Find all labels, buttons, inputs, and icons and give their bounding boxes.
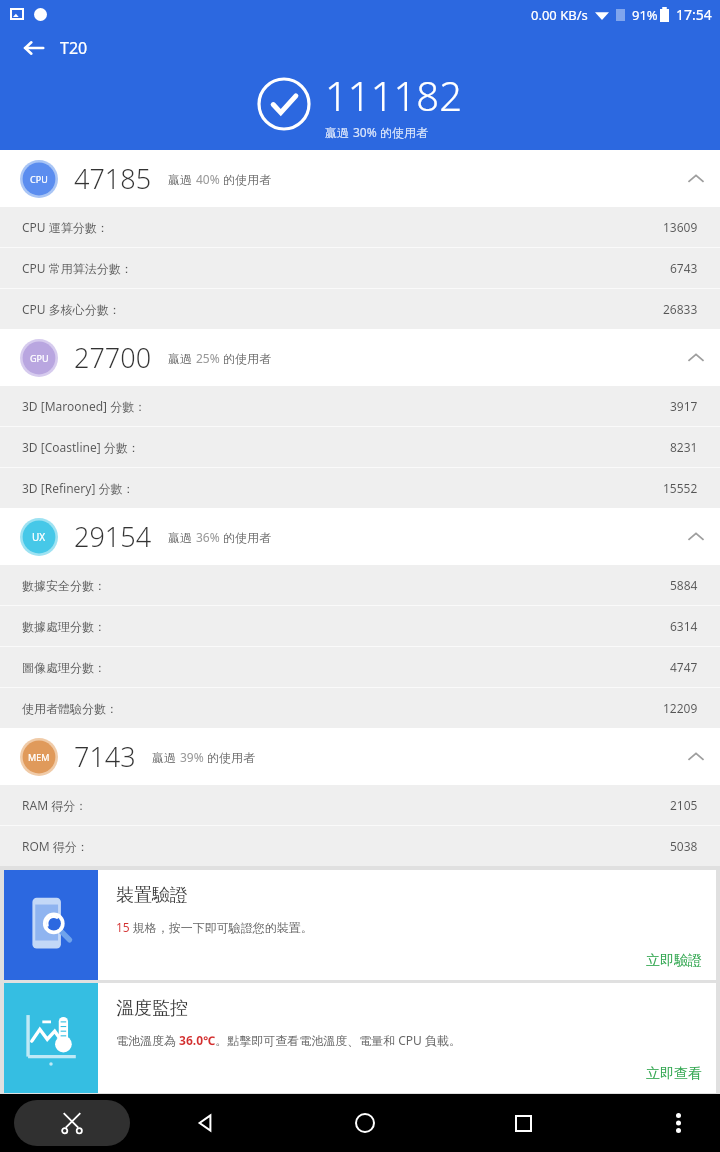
button[interactable]: 裝置驗證: [4, 870, 716, 980]
staticText: CPU 常用算法分數：: [22, 260, 133, 276]
staticText: 贏過: [168, 529, 196, 545]
staticText: 5038: [670, 838, 698, 854]
button[interactable]: 3D [Marooned] 分數：: [22, 386, 698, 426]
staticText: 贏過: [325, 124, 353, 140]
staticText: 13609: [663, 219, 698, 235]
button[interactable]: 立即驗證: [646, 952, 702, 970]
button[interactable]: CPU 常用算法分數：: [22, 248, 698, 288]
button[interactable]: More options: [656, 1101, 700, 1145]
staticText: 26833: [663, 301, 698, 317]
button[interactable]: 立即查看: [646, 1065, 702, 1083]
staticText: T20: [60, 37, 88, 59]
button[interactable]: Back: [180, 1097, 232, 1149]
staticText: 111182: [325, 68, 463, 122]
staticText: 使用者體驗分數：: [22, 701, 118, 716]
button[interactable]: Screenshot: [14, 1100, 130, 1146]
staticText: CPU 運算分數：: [22, 219, 109, 235]
button[interactable]: 溫度監控: [4, 983, 716, 1093]
staticText: 27700: [74, 339, 152, 376]
staticText: 0.00 KB/s: [531, 6, 588, 24]
staticText: 數據安全分數：: [22, 578, 106, 593]
staticText: 圖像處理分數：: [22, 660, 106, 675]
staticText: 8231: [670, 439, 698, 455]
button[interactable]: 數據安全分數：: [22, 565, 698, 605]
staticText: GPU: [30, 352, 49, 364]
button[interactable]: 圖像處理分數：: [22, 647, 698, 687]
staticText: 30%: [353, 124, 377, 140]
staticText: 3D [Marooned] 分數：: [22, 398, 147, 414]
button[interactable]: CPU: [0, 150, 720, 207]
staticText: 的使用者: [220, 350, 272, 366]
staticText: 15 規格，按一下即可驗證您的裝置。: [116, 919, 313, 935]
button[interactable]: CPU 運算分數：: [22, 207, 698, 247]
staticText: 的使用者: [220, 171, 272, 187]
staticText: 6314: [670, 618, 698, 634]
staticText: 91%: [632, 6, 658, 24]
staticText: 40%: [196, 171, 220, 187]
staticText: 17:54: [676, 5, 712, 24]
button[interactable]: Home: [339, 1097, 391, 1149]
button[interactable]: 使用者體驗分數：: [22, 688, 698, 728]
staticText: ROM 得分：: [22, 838, 89, 854]
button[interactable]: GPU: [0, 329, 720, 386]
button[interactable]: Recents: [497, 1097, 549, 1149]
button[interactable]: Collapse: [672, 733, 720, 781]
staticText: 的使用者: [377, 124, 429, 140]
button[interactable]: CPU 多核心分數：: [22, 289, 698, 329]
staticText: 6743: [670, 260, 698, 276]
button[interactable]: 3D [Refinery] 分數：: [22, 468, 698, 508]
staticText: 的使用者: [204, 749, 256, 765]
staticText: 裝置驗證: [116, 884, 188, 907]
button[interactable]: UX: [0, 508, 720, 565]
staticText: 4747: [670, 659, 698, 675]
staticText: 29154: [74, 518, 152, 555]
staticText: 電池溫度為 36.0℃。點擊即可查看電池溫度、電量和 CPU 負載。: [116, 1032, 462, 1048]
staticText: RAM 得分：: [22, 797, 88, 813]
button[interactable]: ROM 得分：: [22, 826, 698, 866]
staticText: 2105: [670, 797, 698, 813]
staticText: 25%: [196, 350, 220, 366]
staticText: 39%: [180, 749, 204, 765]
staticText: 3917: [670, 398, 698, 414]
staticText: 12209: [663, 700, 698, 716]
staticText: 贏過: [152, 749, 180, 765]
staticText: 數據處理分數：: [22, 619, 106, 634]
staticText: 15552: [663, 480, 698, 496]
button[interactable]: 數據處理分數：: [22, 606, 698, 646]
button[interactable]: 3D [Coastline] 分數：: [22, 427, 698, 467]
staticText: 7143: [74, 738, 136, 775]
button[interactable]: Collapse: [672, 155, 720, 203]
button[interactable]: MEM: [0, 728, 720, 785]
staticText: 47185: [74, 160, 152, 197]
staticText: CPU: [30, 173, 48, 185]
button[interactable]: Back: [14, 28, 54, 68]
button[interactable]: Collapse: [672, 334, 720, 382]
staticText: 3D [Coastline] 分數：: [22, 439, 140, 455]
staticText: 贏過: [168, 171, 196, 187]
staticText: 的使用者: [220, 529, 272, 545]
staticText: UX: [32, 530, 46, 544]
staticText: 溫度監控: [116, 997, 188, 1020]
button[interactable]: Collapse: [672, 513, 720, 561]
staticText: 贏過: [168, 350, 196, 366]
staticText: 5884: [670, 577, 698, 593]
staticText: 36%: [196, 529, 220, 545]
staticText: CPU 多核心分數：: [22, 301, 121, 317]
button[interactable]: RAM 得分：: [22, 785, 698, 825]
staticText: MEM: [28, 751, 50, 763]
staticText: 3D [Refinery] 分數：: [22, 480, 135, 496]
